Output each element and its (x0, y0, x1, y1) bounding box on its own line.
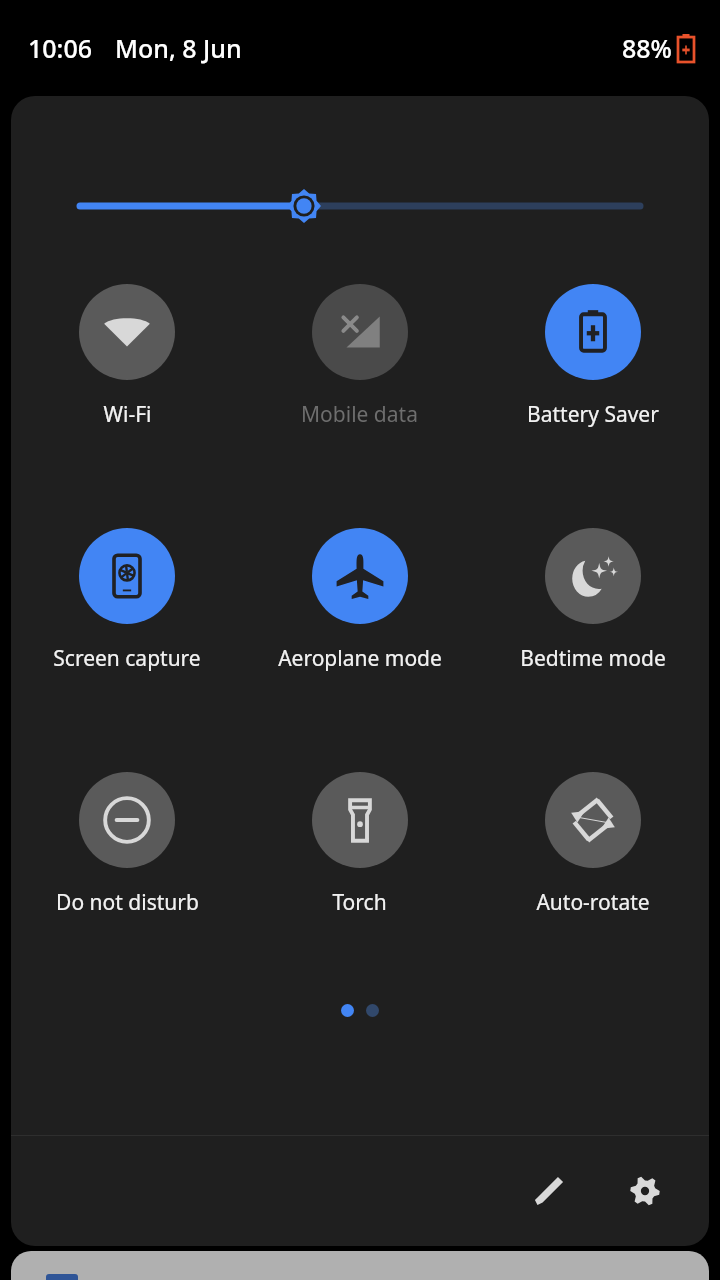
staticText: Mon, 8 Jun (115, 31, 242, 65)
staticText: Wi-Fi (103, 400, 152, 429)
button[interactable]: Auto-rotate (476, 772, 709, 917)
staticText: 10:06 (28, 31, 93, 65)
staticText: Screen capture (53, 644, 201, 673)
other: Wi-Fi (79, 284, 175, 380)
other: Auto-rotate (545, 772, 641, 868)
button[interactable]: Settings (617, 1163, 673, 1219)
button[interactable]: Wi-Fi (11, 284, 243, 429)
staticText: Do not disturb (56, 888, 199, 917)
button[interactable]: Edit tiles (521, 1163, 577, 1219)
staticText: Battery Saver (527, 400, 659, 429)
other: Do not disturb (79, 772, 175, 868)
other: Bedtime mode (545, 528, 641, 624)
other: Screen capture (79, 528, 175, 624)
button[interactable]: Torch (243, 772, 476, 917)
staticText: Mobile data (301, 400, 418, 429)
other: Mobile data (312, 284, 408, 380)
button[interactable]: Mobile data (243, 284, 476, 429)
other: Aeroplane mode (312, 528, 408, 624)
staticText: Torch (332, 888, 387, 917)
other: Torch (312, 772, 408, 868)
button[interactable]: Bedtime mode (476, 528, 709, 673)
staticText: Bedtime mode (520, 644, 666, 673)
button[interactable]: Screen capture (11, 528, 243, 673)
button[interactable]: Aeroplane mode (243, 528, 476, 673)
staticText: 88% (622, 31, 672, 65)
button[interactable]: Battery Saver (476, 284, 709, 429)
other: Battery Saver (545, 284, 641, 380)
staticText: Auto-rotate (536, 888, 650, 917)
button[interactable]: Do not disturb (11, 772, 243, 917)
staticText: Aeroplane mode (278, 644, 442, 673)
